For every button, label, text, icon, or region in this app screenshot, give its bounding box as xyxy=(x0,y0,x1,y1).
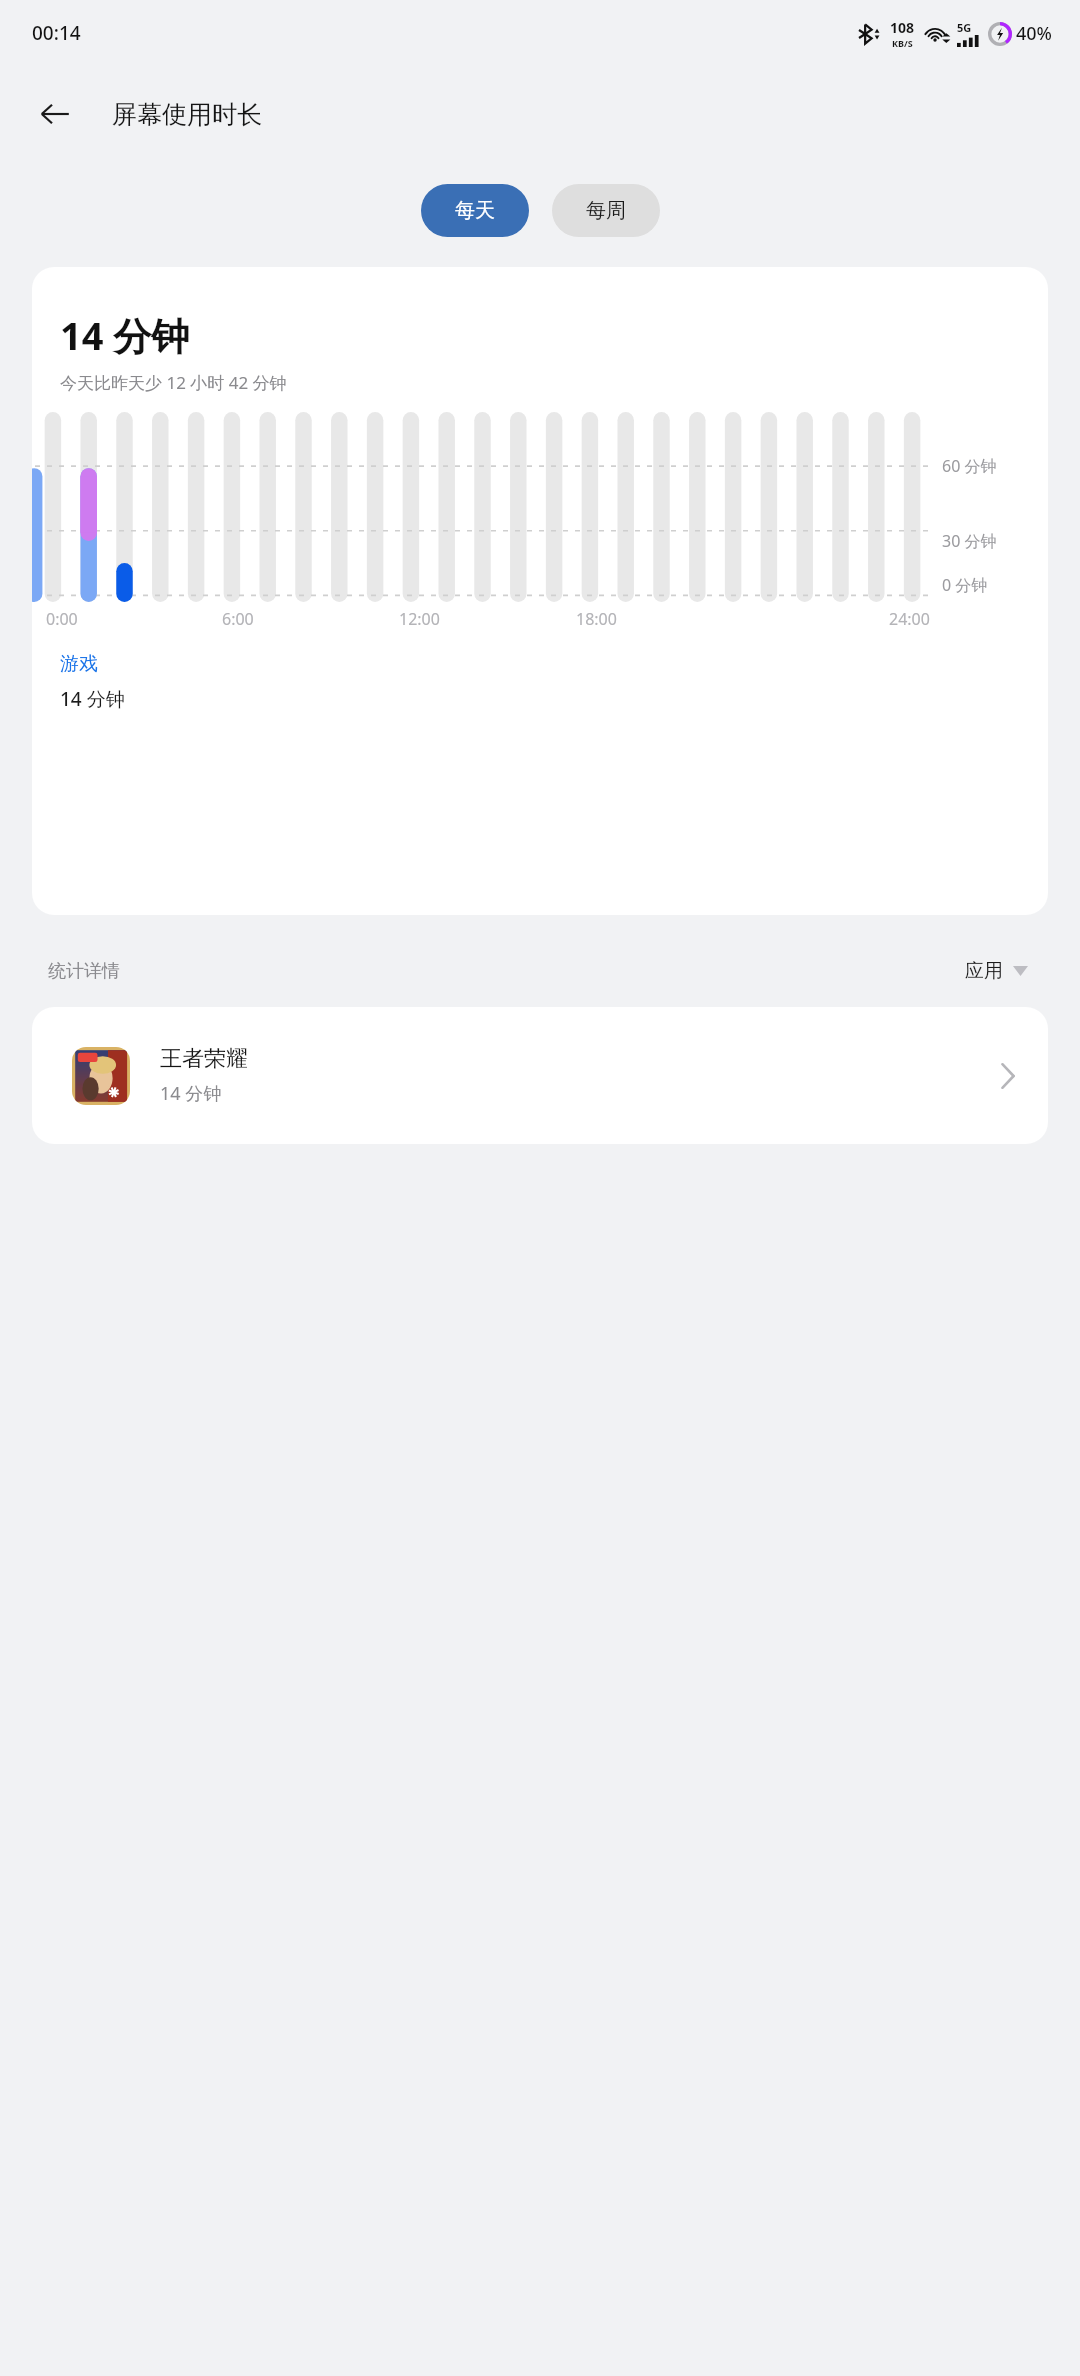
staticText: 统计详情 xyxy=(48,960,120,983)
staticText: 每周 xyxy=(586,198,626,223)
staticText: 24:00 xyxy=(889,608,930,630)
staticText: 应用 xyxy=(965,959,1003,983)
button[interactable]: 应用 xyxy=(961,955,1032,987)
staticText: 14 分钟 xyxy=(60,309,190,361)
staticText: 0 分钟 xyxy=(942,574,988,596)
staticText: KB/S xyxy=(892,37,913,49)
staticText: 14 分钟 xyxy=(160,1081,222,1106)
staticText: 60 分钟 xyxy=(942,455,997,477)
staticText: 6:00 xyxy=(222,608,254,630)
button[interactable]: 每周 xyxy=(552,184,660,237)
staticText: 今天比昨天少 12 小时 42 分钟 xyxy=(60,371,287,394)
staticText: 14 分钟 xyxy=(60,686,125,712)
staticText: 18:00 xyxy=(576,608,617,630)
staticText: 30 分钟 xyxy=(942,530,997,552)
staticText: 00:14 xyxy=(32,20,81,46)
staticText: 屏幕使用时长 xyxy=(112,99,262,130)
staticText: 5G xyxy=(957,20,972,35)
button[interactable]: Back xyxy=(28,87,82,141)
button[interactable]: 每天 xyxy=(421,184,529,237)
button[interactable]: 14 分钟 xyxy=(32,267,1048,915)
staticText: 每天 xyxy=(455,198,495,223)
staticText: 12:00 xyxy=(399,608,440,630)
staticText: 40% xyxy=(1016,21,1052,46)
staticText: 王者荣耀 xyxy=(160,1045,248,1073)
staticText: 游戏 xyxy=(60,652,98,676)
button[interactable]: 王者荣耀 xyxy=(32,1007,1048,1144)
staticText: 0:00 xyxy=(46,608,78,630)
staticText: 108 xyxy=(890,18,915,37)
